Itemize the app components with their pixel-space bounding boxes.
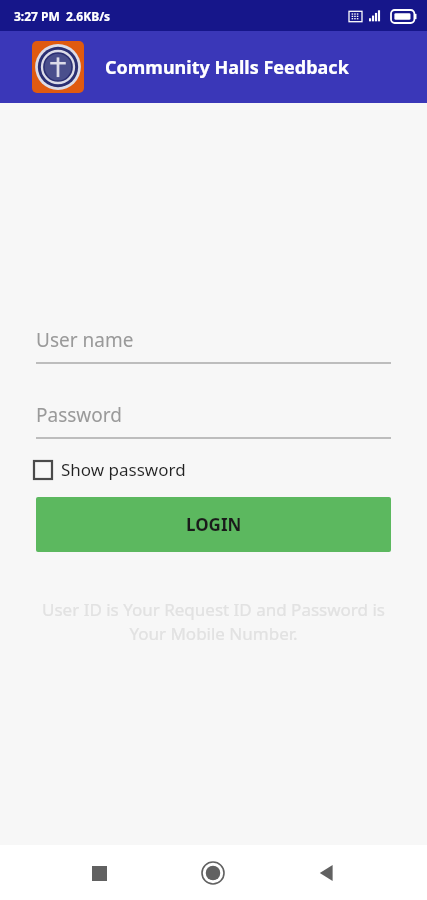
button[interactable]: Recent apps bbox=[76, 850, 122, 896]
staticText: Password bbox=[36, 402, 122, 428]
button[interactable]: App logo bbox=[32, 41, 84, 93]
staticText: Community Halls Feedback bbox=[105, 55, 349, 80]
button[interactable]: User name bbox=[36, 327, 391, 364]
staticText: User name bbox=[36, 327, 134, 353]
button[interactable]: LOGIN bbox=[36, 497, 391, 552]
button[interactable]: Back bbox=[304, 850, 350, 896]
staticText: LOGIN bbox=[186, 513, 242, 536]
button[interactable]: Home bbox=[190, 850, 236, 896]
staticText: 3:27 PM 2.6KB/s bbox=[14, 8, 111, 24]
staticText: User ID is Your Request ID and Password … bbox=[24, 598, 403, 645]
button[interactable]: Password bbox=[36, 402, 391, 439]
button[interactable]: Show password bbox=[32, 455, 188, 484]
staticText: Show password bbox=[61, 458, 186, 481]
